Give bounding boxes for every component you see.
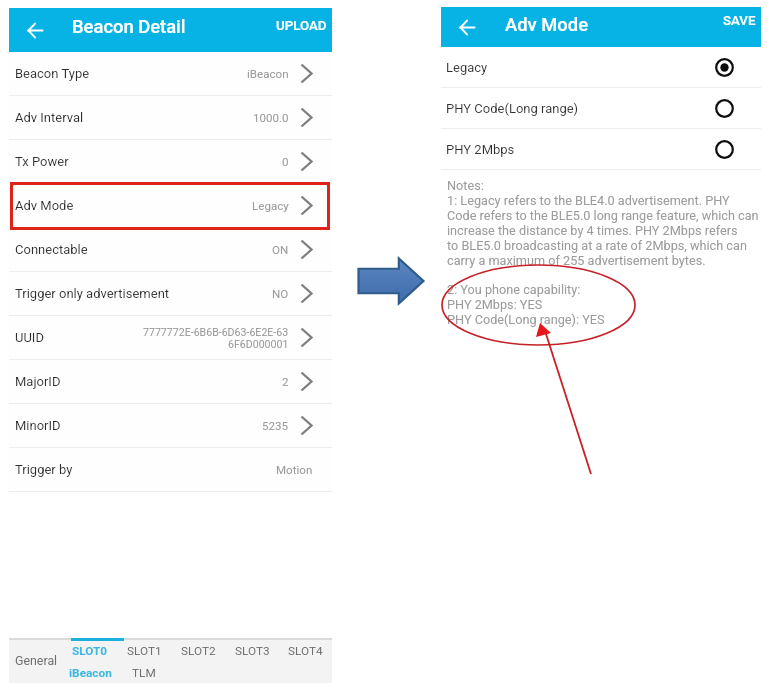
staticText: Code refers to the BLE5.0 long range fea… — [447, 208, 759, 223]
staticText: Adv Interval — [15, 110, 84, 125]
button[interactable]: Adv Interval — [9, 96, 332, 139]
staticText: Connectable — [15, 242, 88, 257]
staticText: Adv Mode — [505, 14, 588, 36]
button[interactable]: SAVE — [720, 13, 759, 41]
staticText: SLOT0 — [72, 644, 108, 658]
staticText: 2 — [282, 375, 289, 389]
button[interactable]: PHY 2Mbps — [441, 129, 761, 169]
staticText: Motion — [276, 463, 313, 477]
staticText: Beacon Type — [15, 66, 90, 81]
staticText: Legacy — [446, 60, 488, 75]
staticText: increase the distance by 4 times. PHY 2M… — [447, 223, 738, 238]
staticText: iBeacon — [69, 666, 112, 680]
staticText: PHY 2Mbps: YES — [447, 297, 543, 312]
button[interactable]: Beacon Type — [9, 52, 332, 95]
staticText: Trigger by — [15, 462, 73, 477]
staticText: Adv Mode — [15, 198, 74, 213]
staticText: PHY 2Mbps — [446, 142, 515, 157]
button[interactable]: Legacy — [441, 47, 761, 87]
staticText: SAVE — [723, 13, 756, 29]
button[interactable]: UPLOAD — [273, 16, 330, 44]
staticText: ON — [272, 243, 289, 257]
staticText: SLOT3 — [235, 644, 270, 658]
button[interactable]: MajorID — [9, 360, 332, 403]
staticText: 7777772E-6B6B-6D63-6E2E-63 — [143, 326, 289, 338]
staticText: 5235 — [262, 419, 289, 433]
staticText: NO — [272, 287, 289, 301]
button[interactable]: SLOT0 — [63, 638, 117, 683]
staticText: to BLE5.0 broadcasting at a rate of 2Mbp… — [447, 238, 747, 253]
button[interactable]: Back — [22, 17, 48, 43]
staticText: MinorID — [15, 418, 61, 433]
staticText: Beacon Detail — [72, 16, 186, 38]
staticText: TLM — [132, 666, 156, 680]
staticText: Trigger only advertisement — [15, 286, 170, 301]
staticText: 1: Legacy refers to the BLE4.0 advertise… — [447, 193, 730, 208]
button[interactable]: UUID — [9, 316, 332, 359]
staticText: SLOT4 — [288, 644, 323, 658]
staticText: PHY Code(Long range): YES — [447, 312, 605, 327]
staticText: 1000.0 — [253, 111, 289, 125]
staticText: SLOT2 — [181, 644, 216, 658]
button[interactable]: SLOT2 — [171, 638, 225, 683]
staticText: 2: You phone capability: — [447, 282, 581, 297]
button[interactable]: Trigger by — [9, 448, 332, 491]
staticText: iBeacon — [247, 67, 289, 81]
button[interactable]: SLOT1 — [117, 638, 171, 683]
button[interactable]: General — [9, 638, 63, 683]
staticText: MajorID — [15, 374, 61, 389]
staticText: carry a maximum of 255 advertisement byt… — [447, 253, 706, 268]
staticText: Legacy — [252, 199, 289, 213]
button[interactable]: SLOT3 — [225, 638, 279, 683]
staticText: 0 — [282, 155, 289, 169]
staticText: Notes: — [447, 178, 484, 193]
button[interactable]: MinorID — [9, 404, 332, 447]
staticText: General — [15, 653, 58, 668]
button[interactable]: Connectable — [9, 228, 332, 271]
button[interactable]: Adv Mode — [9, 184, 332, 227]
button[interactable]: Tx Power — [9, 140, 332, 183]
button[interactable]: Trigger only advertisement — [9, 272, 332, 315]
staticText: UPLOAD — [276, 18, 327, 34]
button[interactable]: SLOT4 — [279, 638, 332, 683]
staticText: UUID — [15, 330, 44, 345]
staticText: PHY Code(Long range) — [446, 101, 579, 116]
button[interactable]: PHY Code(Long range) — [441, 88, 761, 128]
staticText: Tx Power — [15, 154, 69, 169]
staticText: SLOT1 — [127, 644, 162, 658]
button[interactable]: Back — [454, 14, 480, 40]
staticText: 6F6D000001 — [228, 338, 289, 350]
